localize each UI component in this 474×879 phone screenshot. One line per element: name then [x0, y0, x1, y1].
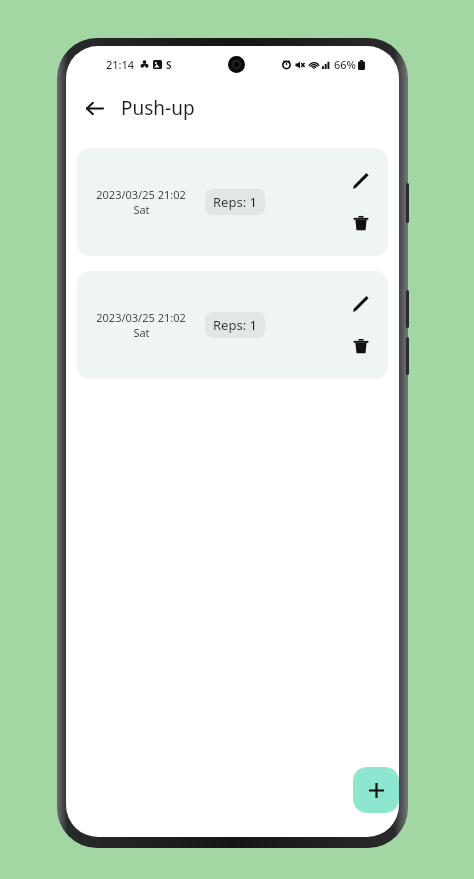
button[interactable]: Delete [346, 208, 376, 238]
staticText: Reps: 1 [213, 316, 257, 334]
button[interactable]: Edit [346, 289, 376, 319]
staticText: Sat [133, 325, 150, 340]
staticText: Sat [133, 202, 150, 217]
staticText: Push-up [121, 95, 195, 121]
staticText: 66% [334, 57, 356, 72]
button[interactable]: Delete [346, 331, 376, 361]
button[interactable]: 2023/03/25 21:02 [77, 271, 388, 379]
button[interactable]: Back [76, 90, 112, 126]
staticText: 2023/03/25 21:02 [96, 310, 186, 325]
staticText: S [166, 58, 172, 72]
staticText: 2023/03/25 21:02 [96, 187, 186, 202]
button[interactable]: Edit [346, 166, 376, 196]
button[interactable]: 2023/03/25 21:02 [77, 148, 388, 256]
staticText: 21:14 [106, 57, 135, 72]
staticText: Reps: 1 [213, 193, 257, 211]
button[interactable]: Add record [353, 767, 399, 813]
